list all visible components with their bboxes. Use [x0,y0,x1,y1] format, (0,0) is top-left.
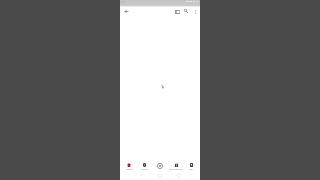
button[interactable]: Back [122,7,131,16]
staticText: Shorts [141,168,148,171]
button[interactable]: Home [121,161,137,173]
staticText: Subscriptions [169,168,183,171]
button[interactable]: Subscriptions [168,161,184,173]
button[interactable]: Cast [173,8,181,16]
button[interactable]: Shorts [136,161,152,173]
button[interactable]: You [183,161,199,173]
button[interactable]: Recent apps [174,171,182,179]
button[interactable]: Search [182,7,190,15]
button[interactable]: Create [152,161,168,173]
button[interactable]: Back [137,171,145,179]
staticText: You [189,168,193,171]
button[interactable]: Home [156,171,164,179]
button[interactable]: More options [192,8,199,15]
staticText: Home [126,168,133,171]
